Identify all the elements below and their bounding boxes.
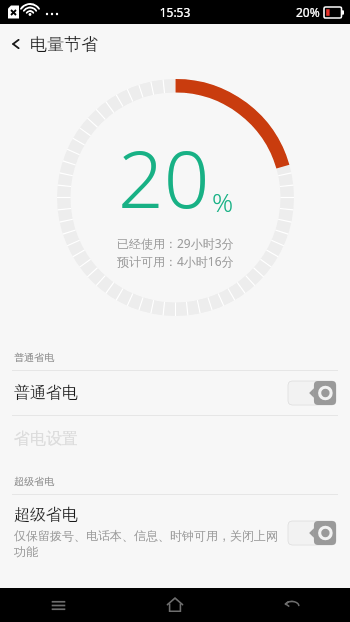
staticText: %: [212, 184, 234, 219]
button[interactable]: 超级省电: [0, 495, 350, 570]
staticText: 20%: [296, 4, 320, 20]
staticText: 普通省电: [14, 351, 54, 364]
staticText: 超级省电: [14, 505, 78, 525]
staticText: 电量节省: [30, 34, 98, 55]
staticText: 20: [118, 122, 210, 231]
staticText: 15:53: [0, 4, 350, 20]
button[interactable]: 普通省电: [0, 371, 350, 415]
staticText: 省电设置: [14, 429, 78, 449]
button[interactable]: 省电设置: [0, 416, 350, 462]
button[interactable]: Menu: [0, 588, 116, 622]
staticText: 预计可用：4小时16分: [117, 253, 234, 269]
button[interactable]: Back: [0, 37, 34, 51]
button[interactable]: Toggle: [288, 381, 336, 405]
staticText: 已经使用：29小时3分: [117, 235, 234, 251]
staticText: 超级省电: [14, 475, 54, 488]
button[interactable]: Back: [233, 588, 350, 622]
staticText: 仅保留拨号、电话本、信息、时钟可用，关闭上网功能: [14, 528, 278, 560]
button[interactable]: Toggle: [288, 521, 336, 545]
button[interactable]: Home: [116, 588, 233, 622]
staticText: 普通省电: [14, 383, 78, 403]
